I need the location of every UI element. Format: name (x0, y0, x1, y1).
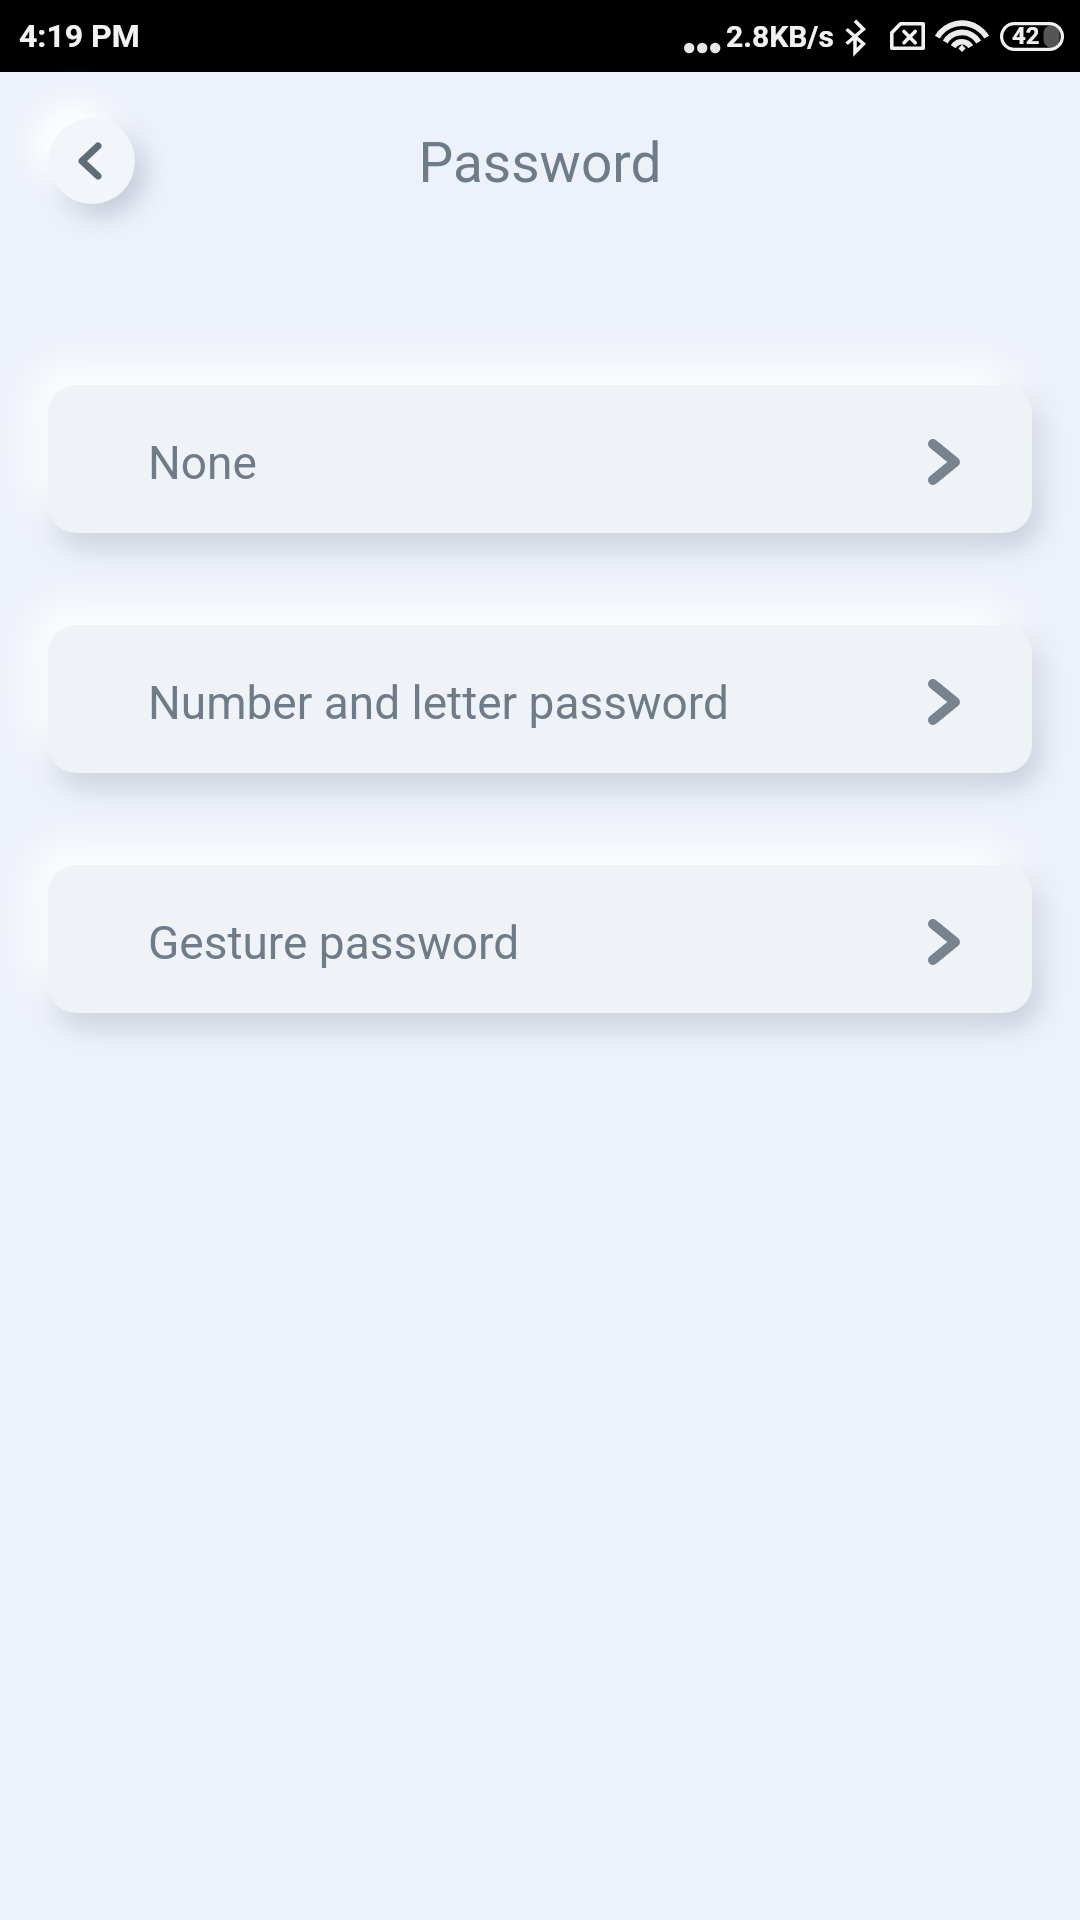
staticText: Password (0, 131, 1080, 195)
button[interactable]: None (48, 385, 1032, 533)
button[interactable]: Back (49, 118, 135, 204)
staticText: None (148, 436, 257, 490)
staticText: Number and letter password (148, 676, 729, 730)
staticText: 4:19 PM (19, 17, 140, 55)
staticText: 42 (1012, 22, 1040, 50)
staticText: Gesture password (148, 916, 520, 970)
button[interactable]: Gesture password (48, 865, 1032, 1013)
button[interactable]: Number and letter password (48, 625, 1032, 773)
staticText: 2.8KB/s (726, 19, 834, 54)
